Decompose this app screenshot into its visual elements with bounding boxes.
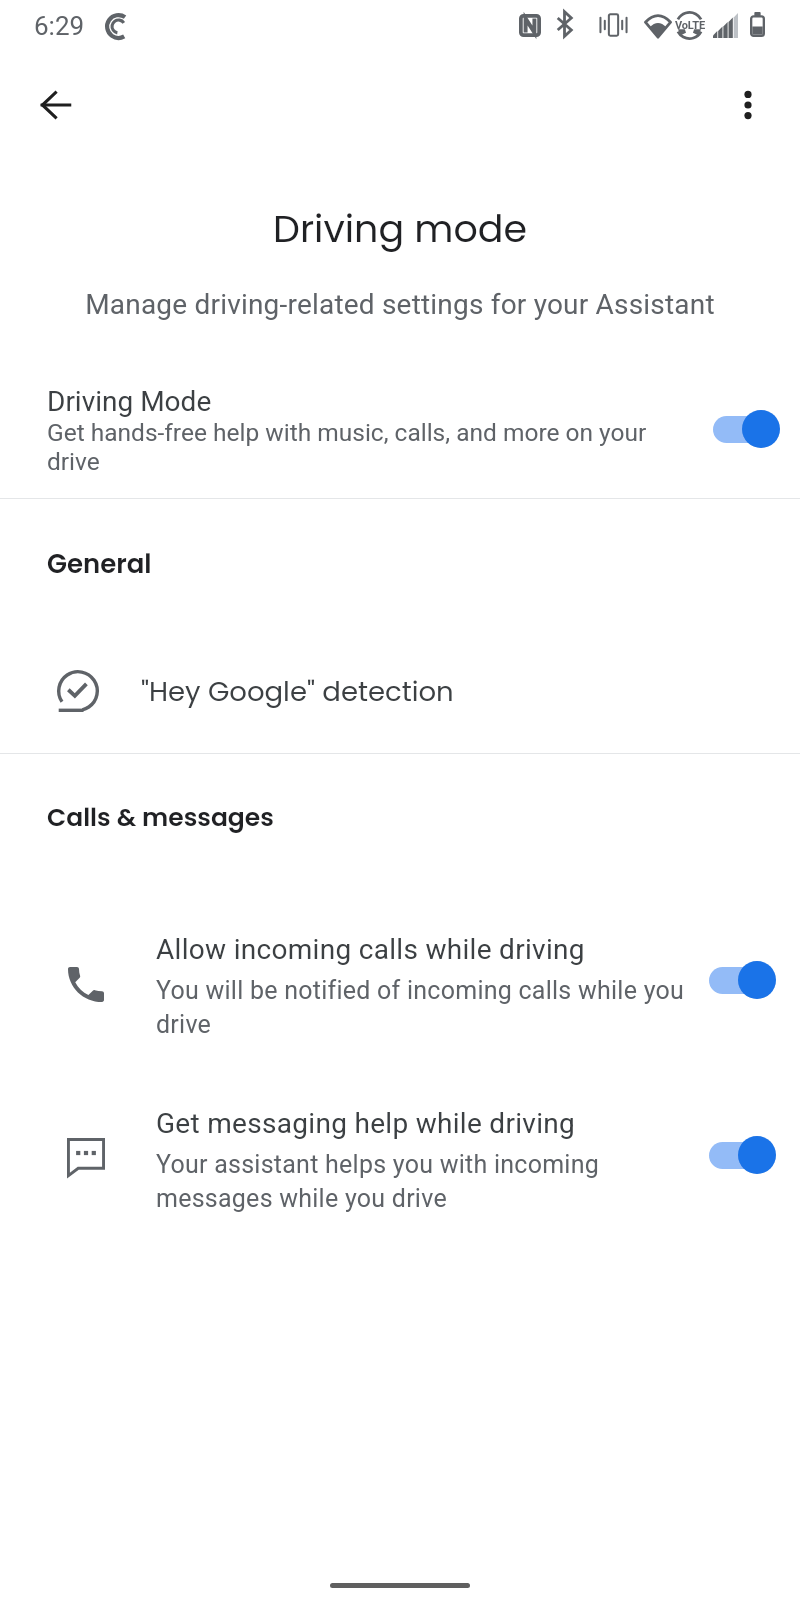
button[interactable]: More options	[718, 75, 778, 135]
button[interactable]: "Hey Google" detection	[0, 646, 800, 736]
staticText: "Hey Google" detection	[141, 672, 454, 710]
button[interactable]: Back	[25, 75, 85, 135]
button[interactable]: Driving Mode	[0, 385, 800, 476]
staticText: Get hands-free help with music, calls, a…	[47, 418, 700, 476]
staticText: Calls & messages	[47, 800, 274, 835]
staticText: Your assistant helps you with incoming m…	[156, 1150, 700, 1213]
staticText: Allow incoming calls while driving	[156, 933, 585, 966]
staticText: VoLTE	[675, 19, 705, 32]
staticText: General	[47, 546, 152, 582]
staticText: 6:29	[34, 11, 85, 41]
button[interactable]: Allow incoming calls while driving	[0, 933, 800, 1039]
staticText: You will be notified of incoming calls w…	[156, 976, 700, 1039]
staticText: Manage driving-related settings for your…	[0, 288, 800, 321]
button[interactable]: Get messaging help while driving	[0, 1107, 800, 1213]
staticText: Get messaging help while driving	[156, 1107, 576, 1140]
staticText: Driving mode	[0, 202, 800, 255]
staticText: Driving Mode	[47, 385, 212, 418]
